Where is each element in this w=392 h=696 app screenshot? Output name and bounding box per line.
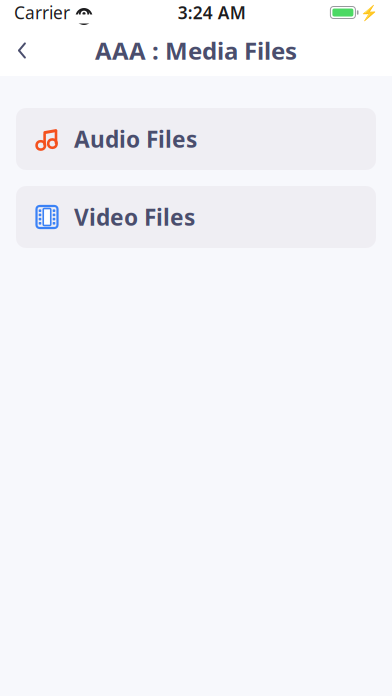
staticText: 3:24 AM: [178, 1, 246, 24]
staticText: AAA : Media Files: [95, 35, 297, 66]
button[interactable]: Audio Files: [16, 108, 376, 170]
staticText: Audio Files: [74, 124, 197, 154]
staticText: ⚡: [360, 4, 378, 21]
staticText: Video Files: [74, 202, 195, 232]
staticText: Carrier: [14, 1, 70, 24]
button[interactable]: Back: [0, 28, 44, 72]
button[interactable]: Video Files: [16, 186, 376, 248]
